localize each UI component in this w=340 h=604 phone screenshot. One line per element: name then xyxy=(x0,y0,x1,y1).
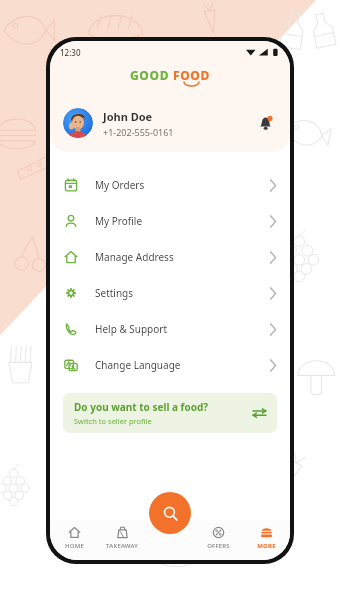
button[interactable]: Search xyxy=(149,492,191,534)
staticText: John Doe xyxy=(103,109,153,124)
button[interactable]: Notifications xyxy=(253,111,277,135)
staticText: OFFERS xyxy=(207,542,230,550)
staticText: Do you want to sell a food? xyxy=(74,400,209,414)
button[interactable]: Manage Address xyxy=(50,239,290,275)
staticText: +1-202-555-0161 xyxy=(103,126,174,138)
button[interactable]: HOME xyxy=(50,520,98,560)
button[interactable]: My Profile xyxy=(50,203,290,239)
button[interactable]: Settings xyxy=(50,275,290,311)
button[interactable]: OFFERS xyxy=(194,520,242,560)
staticText: My Orders xyxy=(95,178,145,192)
button[interactable]: Help & Support xyxy=(50,311,290,347)
staticText: 12:30 xyxy=(60,47,81,58)
button[interactable]: Change Language xyxy=(50,347,290,383)
staticText: Help & Support xyxy=(95,322,168,336)
button[interactable]: Do you want to sell a food? xyxy=(63,393,277,433)
staticText: Settings xyxy=(95,286,134,300)
staticText: Manage Address xyxy=(95,250,174,264)
staticText: MORE xyxy=(257,542,276,550)
staticText: GOOD xyxy=(130,67,173,83)
staticText: My Profile xyxy=(95,214,143,228)
staticText: Switch to seller profile xyxy=(74,416,152,426)
staticText: TAKEAWAY xyxy=(106,542,138,550)
button[interactable]: My Orders xyxy=(50,167,290,203)
button[interactable]: John Doe xyxy=(50,108,290,138)
staticText: FOOD xyxy=(173,67,210,83)
button[interactable]: MORE xyxy=(242,520,290,560)
staticText: Change Language xyxy=(95,358,181,372)
staticText: HOME xyxy=(65,542,84,550)
button[interactable]: TAKEAWAY xyxy=(98,520,146,560)
